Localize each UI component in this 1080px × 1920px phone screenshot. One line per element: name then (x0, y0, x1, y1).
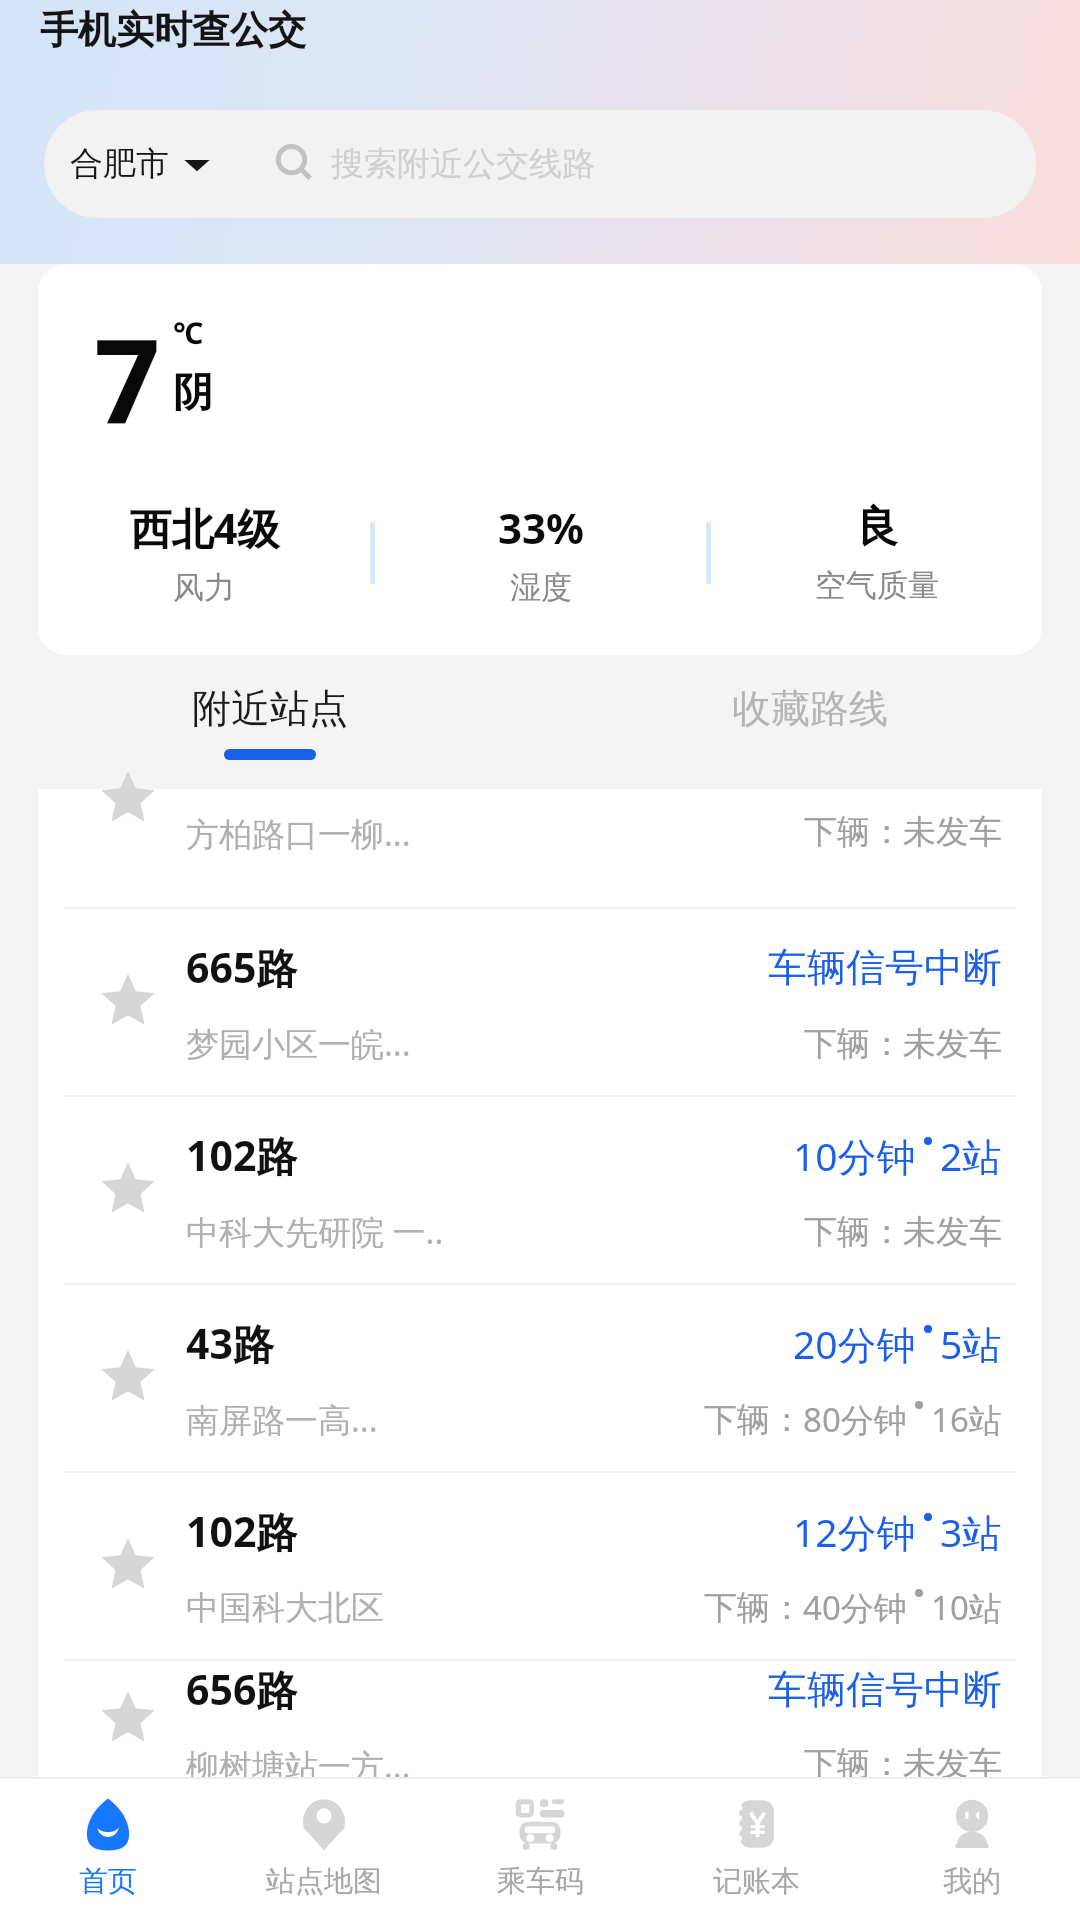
staticText: 中科大先研院 一.. (186, 1209, 444, 1254)
staticText: 搜索附近公交线路 (331, 143, 595, 185)
staticText: 西北4级 (129, 499, 280, 556)
staticText: 车辆信号中断 (768, 1665, 1002, 1714)
staticText: 10站 (931, 1585, 1002, 1630)
staticText: 80分钟 (803, 1397, 907, 1442)
staticText: 5站 (940, 1317, 1002, 1370)
staticText: 记账本 (713, 1863, 800, 1900)
staticText: 16站 (931, 1397, 1002, 1442)
staticText: 柳树塘站一方... (186, 1743, 411, 1777)
staticText: 乘车码 (497, 1863, 584, 1900)
button[interactable]: 665路 (38, 909, 1042, 1095)
button[interactable]: 记账本 (648, 1777, 864, 1920)
staticText: 10分钟 (793, 1129, 916, 1182)
staticText: 空气质量 (815, 566, 939, 605)
staticText: 良 (856, 501, 898, 554)
staticText: 102路 (186, 1127, 298, 1183)
button[interactable]: 我的 (864, 1777, 1080, 1920)
button[interactable]: 合肥市 (44, 110, 1036, 218)
button[interactable]: 102路 (38, 1097, 1042, 1283)
staticText: 合肥市 (70, 143, 169, 185)
staticText: 7 (94, 300, 161, 458)
button[interactable]: 收藏路线 (540, 655, 1080, 789)
button[interactable]: 方柏路口一柳... (38, 789, 1042, 907)
staticText: 南屏路一高... (186, 1397, 378, 1442)
button[interactable]: 656路 (38, 1661, 1042, 1777)
staticText: 下辆： (704, 1587, 803, 1629)
button[interactable]: 站点地图 (216, 1777, 432, 1920)
staticText: 665路 (186, 939, 298, 995)
staticText: 方柏路口一柳... (186, 811, 411, 856)
staticText: 3站 (940, 1505, 1002, 1558)
staticText: 下辆：未发车 (804, 1211, 1002, 1253)
button[interactable]: 乘车码 (432, 1777, 648, 1920)
staticText: 梦园小区一皖... (186, 1021, 411, 1066)
staticText: 手机实时查公交 (40, 6, 306, 54)
button[interactable]: 良 (711, 501, 1042, 605)
staticText: ℃ (173, 312, 204, 353)
staticText: 风力 (173, 568, 235, 607)
button[interactable]: 33% (375, 499, 706, 607)
staticText: 下辆：未发车 (804, 811, 1002, 853)
staticText: 2站 (940, 1129, 1002, 1182)
button[interactable]: 43路 (38, 1285, 1042, 1471)
staticText: 下辆：未发车 (804, 1743, 1002, 1777)
staticText: 阴 (173, 367, 213, 417)
staticText: 附近站点 (192, 684, 348, 733)
button[interactable]: 首页 (0, 1777, 216, 1920)
staticText: 20分钟 (793, 1317, 916, 1370)
staticText: 下辆： (704, 1399, 803, 1441)
staticText: 车辆信号中断 (768, 943, 1002, 992)
button[interactable]: 西北4级 (38, 499, 370, 607)
staticText: 首页 (79, 1863, 137, 1900)
staticText: 656路 (186, 1661, 298, 1717)
staticText: 下辆：未发车 (804, 1023, 1002, 1065)
button[interactable]: 附近站点 (0, 655, 540, 789)
staticText: 43路 (186, 1315, 274, 1371)
staticText: 12分钟 (793, 1505, 916, 1558)
staticText: 33% (498, 499, 584, 556)
button[interactable]: 7 (38, 264, 1042, 655)
button[interactable]: 102路 (38, 1473, 1042, 1659)
staticText: 收藏路线 (732, 684, 888, 733)
staticText: 40分钟 (803, 1585, 907, 1630)
staticText: 站点地图 (266, 1863, 382, 1900)
staticText: 湿度 (510, 568, 572, 607)
staticText: 我的 (943, 1863, 1001, 1900)
staticText: 中国科大北区 (186, 1587, 384, 1629)
staticText: 102路 (186, 1503, 298, 1559)
